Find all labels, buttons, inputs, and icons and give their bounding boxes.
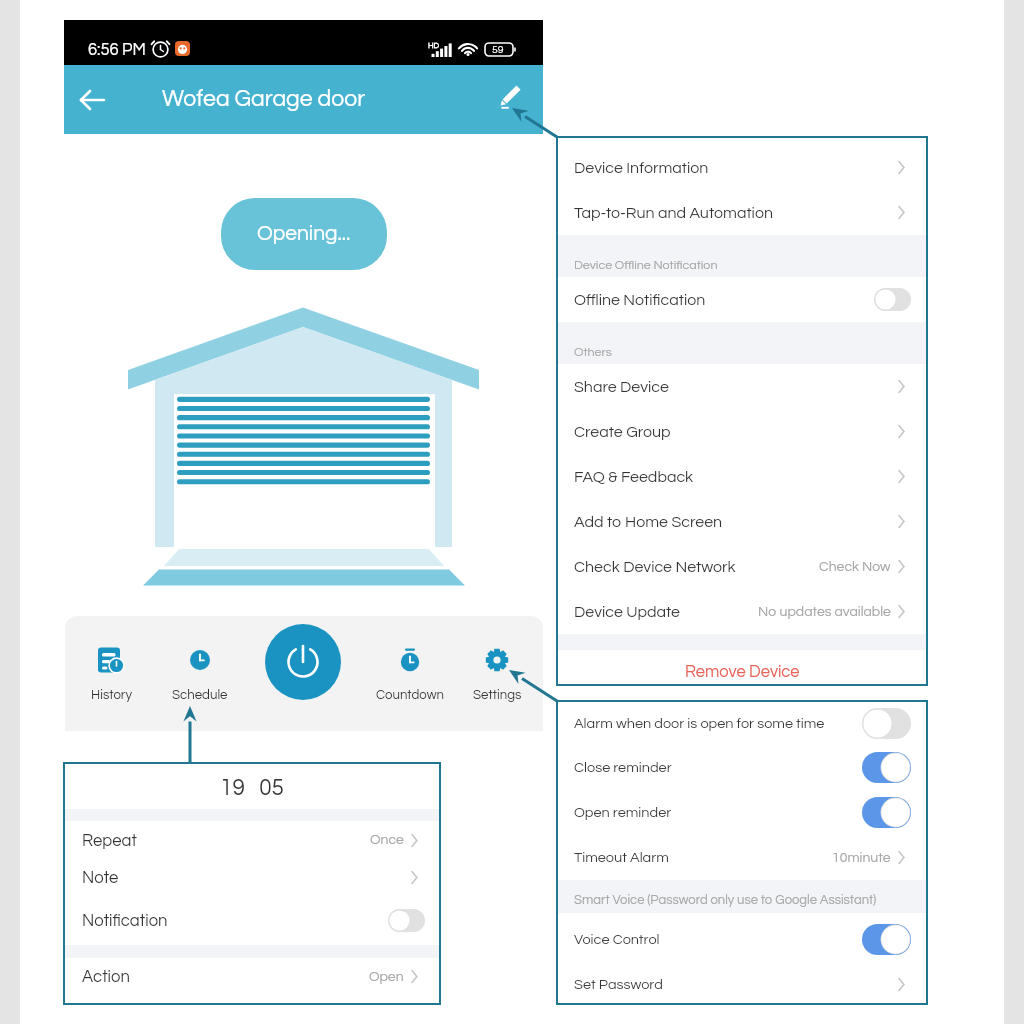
staticText: Voice Control <box>574 932 660 947</box>
staticText: Opening... <box>257 223 351 245</box>
button[interactable]: Share Device <box>558 364 926 409</box>
button[interactable]: Create Group <box>558 409 926 454</box>
staticText: Others <box>574 346 612 359</box>
staticText: Open reminder <box>574 805 672 820</box>
staticText: Note <box>82 869 119 886</box>
staticText: 59 <box>492 44 504 55</box>
button[interactable] <box>874 288 911 311</box>
button[interactable]: FAQ & Feedback <box>558 454 926 499</box>
staticText: Set Password <box>574 977 663 992</box>
button[interactable]: Alarm when door is open for some time <box>558 702 926 745</box>
staticText: No updates available <box>758 605 891 619</box>
button[interactable]: Power <box>265 624 341 700</box>
button[interactable] <box>862 708 911 739</box>
button[interactable]: Notification <box>65 895 439 945</box>
button[interactable]: Timeout Alarm <box>558 835 926 880</box>
button[interactable] <box>388 909 425 932</box>
button[interactable]: Edit <box>499 85 531 117</box>
staticText: Repeat <box>82 832 137 849</box>
button[interactable]: Set Password <box>558 965 926 1003</box>
staticText: Create Group <box>574 424 671 440</box>
button[interactable]: Remove Device <box>558 650 926 684</box>
staticText: Settings <box>473 688 522 702</box>
staticText: Add to Home Screen <box>574 514 723 530</box>
staticText: History <box>91 688 132 702</box>
staticText: Tap-to-Run and Automation <box>574 205 773 221</box>
button[interactable]: Opening... <box>221 198 387 270</box>
button[interactable]: Note <box>65 859 439 895</box>
staticText: Remove Device <box>685 663 800 680</box>
button[interactable] <box>862 924 911 955</box>
button[interactable] <box>862 752 911 783</box>
button[interactable]: Close reminder <box>558 745 926 790</box>
button[interactable]: Device Update <box>558 589 926 634</box>
staticText: 10minute <box>832 851 891 865</box>
staticText: 6:56 PM <box>88 41 146 58</box>
staticText: Schedule <box>172 688 228 702</box>
staticText: Check Device Network <box>574 559 736 575</box>
staticText: Timeout Alarm <box>574 850 669 865</box>
button[interactable]: Repeat <box>65 821 439 859</box>
button[interactable]: Countdown <box>368 616 452 731</box>
staticText: Smart Voice (Password only use to Google… <box>574 893 877 906</box>
staticText: Close reminder <box>574 760 672 775</box>
staticText: Offline Notification <box>574 292 706 308</box>
button[interactable]: Check Device Network <box>558 544 926 589</box>
button[interactable]: Open reminder <box>558 790 926 835</box>
button[interactable]: History <box>69 616 153 731</box>
staticText: Open <box>369 970 404 984</box>
staticText: Device Offline Notification <box>574 259 718 272</box>
button[interactable]: Schedule <box>158 616 242 731</box>
button[interactable]: Action <box>65 958 439 995</box>
button[interactable]: Add to Home Screen <box>558 499 926 544</box>
staticText: Countdown <box>376 688 444 702</box>
staticText: FAQ & Feedback <box>574 469 694 485</box>
staticText: Once <box>370 833 404 847</box>
button[interactable] <box>862 797 911 828</box>
staticText: Check Now <box>819 560 891 574</box>
staticText: Device Information <box>574 160 709 176</box>
staticText: Share Device <box>574 379 669 395</box>
button[interactable]: Device Information <box>558 145 926 190</box>
staticText: Device Update <box>574 604 680 620</box>
button[interactable]: Settings <box>455 616 539 731</box>
button[interactable]: Tap-to-Run and Automation <box>558 190 926 235</box>
staticText: Notification <box>82 912 168 929</box>
staticText: Action <box>82 968 130 985</box>
staticText: Alarm when door is open for some time <box>574 716 825 731</box>
button[interactable]: Voice Control <box>558 913 926 965</box>
button[interactable]: Back <box>76 80 116 120</box>
staticText: 19 05 <box>220 777 284 800</box>
staticText: Wofea Garage door <box>162 87 366 111</box>
button[interactable]: Offline Notification <box>558 277 926 322</box>
staticText: HD <box>428 41 440 49</box>
